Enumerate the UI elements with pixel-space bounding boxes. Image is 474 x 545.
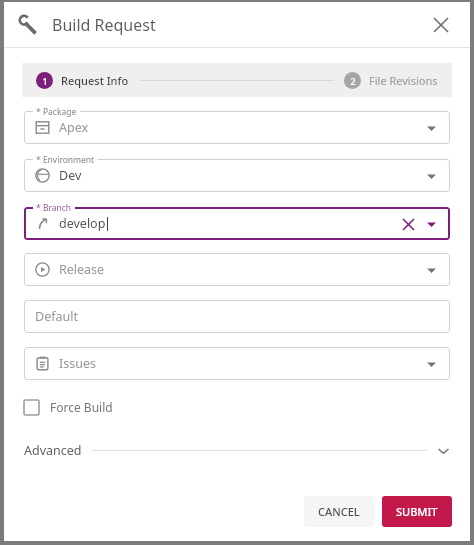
staticText: Build Request xyxy=(52,14,156,36)
staticText: Default xyxy=(35,308,78,325)
button[interactable]: 2 xyxy=(344,72,438,89)
staticText: * Environment xyxy=(36,154,95,166)
staticText: Issues xyxy=(59,355,96,372)
button[interactable] xyxy=(24,111,450,144)
staticText: Dev xyxy=(59,167,82,184)
staticText: develop xyxy=(59,215,106,232)
button[interactable] xyxy=(24,300,450,333)
button[interactable]: Open dropdown xyxy=(423,120,439,136)
staticText: Force Build xyxy=(50,399,113,415)
staticText: Advanced xyxy=(24,442,82,459)
button[interactable]: Advanced xyxy=(24,438,450,463)
staticText: SUBMIT xyxy=(396,504,438,519)
button[interactable] xyxy=(24,207,450,240)
button[interactable]: Open dropdown xyxy=(423,168,439,184)
button[interactable]: 1 xyxy=(36,72,129,89)
button[interactable]: Force Build xyxy=(24,396,113,418)
button[interactable]: Open dropdown xyxy=(423,356,439,372)
button[interactable]: CANCEL xyxy=(304,496,374,527)
staticText: Release xyxy=(59,261,105,278)
button[interactable]: Clear xyxy=(399,215,417,233)
staticText: * Branch xyxy=(36,202,72,214)
button[interactable] xyxy=(24,347,450,380)
button[interactable]: Open dropdown xyxy=(423,216,439,232)
button[interactable] xyxy=(24,253,450,286)
staticText: CANCEL xyxy=(318,504,360,519)
staticText: 1 xyxy=(42,75,48,87)
button[interactable]: Close xyxy=(426,10,456,40)
staticText: Request Info xyxy=(61,73,129,88)
staticText: * Package xyxy=(36,106,77,118)
button[interactable]: Open dropdown xyxy=(423,262,439,278)
staticText: File Revisions xyxy=(369,73,438,88)
staticText: Apex xyxy=(59,119,89,136)
staticText: 2 xyxy=(350,75,356,87)
button[interactable] xyxy=(24,159,450,192)
button[interactable]: SUBMIT xyxy=(382,496,452,527)
